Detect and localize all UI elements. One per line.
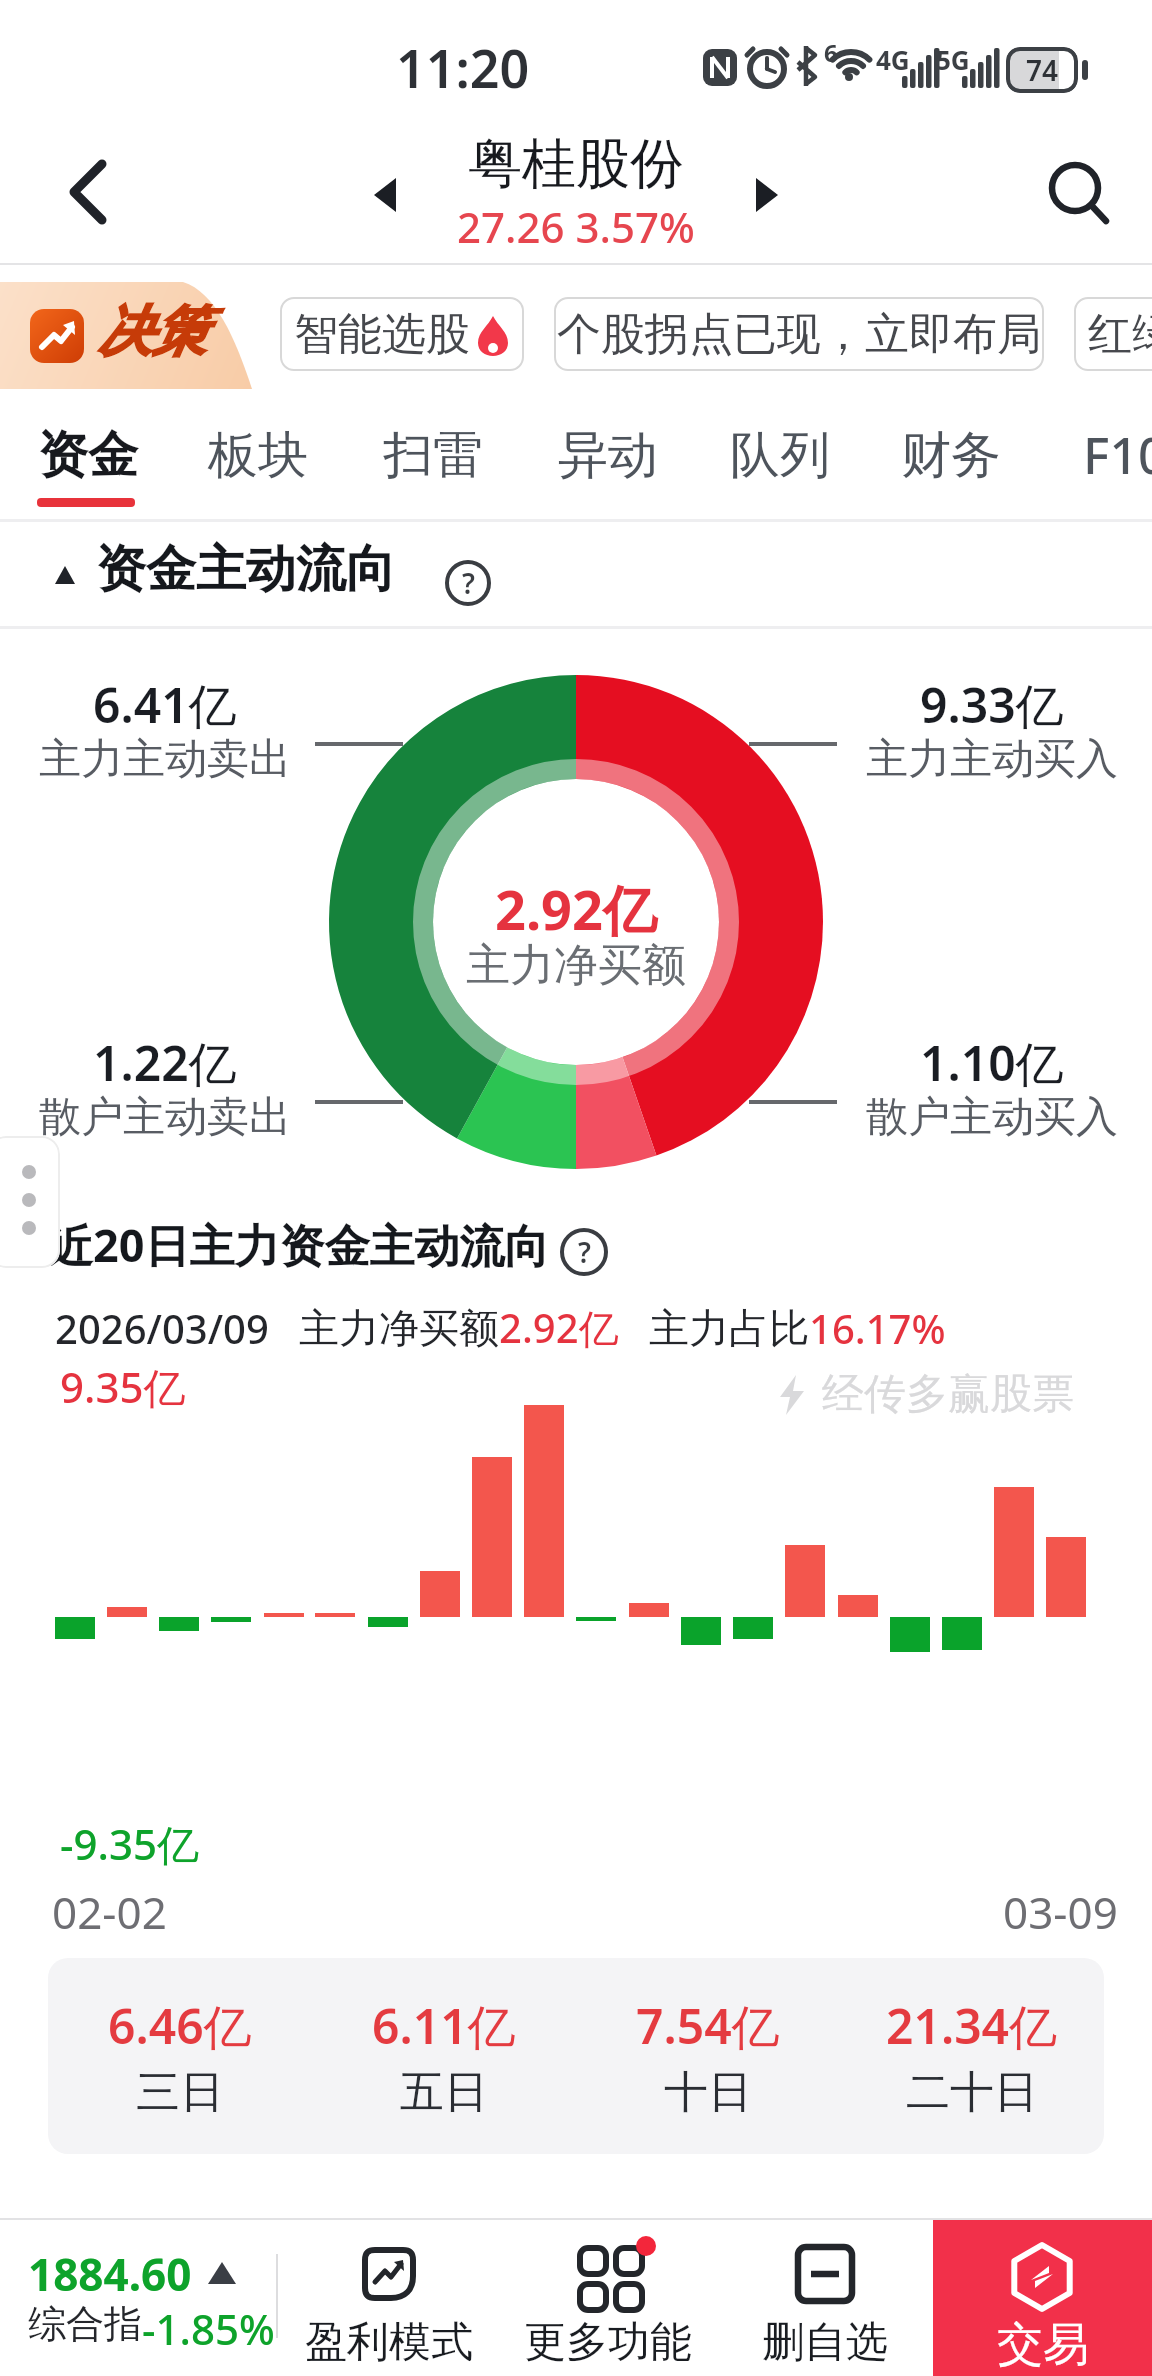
staticText: ? [462,564,475,602]
button[interactable]: 1884.60 [0,2220,280,2376]
staticText: 更多功能 [524,2316,692,2369]
button[interactable]: 交易 [933,2220,1152,2376]
staticText: F10 [1083,421,1152,489]
staticText: 02-02 [52,1882,167,1942]
staticText: 6.11亿 [372,1993,516,2059]
staticText: -1.85% [142,2300,275,2357]
staticText: ? [578,1233,591,1271]
staticText: 近20日主力资金主动流向 [48,1214,550,1275]
button[interactable]: 6.11亿 [312,1958,576,2154]
staticText: 9.33亿 [920,672,1064,738]
staticText: 11:20 [396,32,530,103]
staticText: 资金 [38,424,138,487]
button[interactable]: F10 [1060,410,1152,500]
staticText: 21.34亿 [886,1993,1058,2059]
button[interactable] [754,178,780,212]
staticText: 16.17% [809,1301,946,1355]
staticText: 资金主动流向 [96,538,396,601]
staticText: 删自选 [762,2316,888,2369]
button[interactable]: ? [445,560,491,606]
staticText: 经传多赢股票 [822,1368,1074,1421]
button[interactable]: 智能选股 [280,297,524,371]
button[interactable]: 个股拐点已现，立即布局 [554,297,1044,371]
button[interactable] [1030,145,1125,240]
staticText: -9.35亿 [60,1815,199,1872]
staticText: 队列 [730,424,830,487]
staticText: 三日 [136,2065,224,2120]
staticText: 27.26 3.57% [457,198,695,255]
staticText: 2.92亿 [495,872,657,946]
staticText: 板块 [208,424,308,487]
staticText: 2.92亿 [499,1300,619,1355]
staticText: 5G [936,42,970,77]
staticText: 散户主动买入 [866,1091,1118,1144]
staticText: 十日 [664,2065,752,2120]
staticText: 7.54亿 [636,1993,780,2059]
staticText: 2026/03/09 [55,1301,269,1355]
button[interactable]: 红绿先机 [1074,297,1152,371]
button[interactable]: ? [560,1228,608,1276]
button[interactable]: 财务 [886,410,1016,500]
staticText: 主力主动卖出 [39,733,291,786]
staticText: 盈利模式 [305,2316,473,2369]
staticText: 红绿先机 [1088,307,1152,362]
staticText: 智能选股 [294,307,470,362]
button[interactable]: 6.46亿 [48,1958,312,2154]
button[interactable]: 更多功能 [513,2220,703,2376]
button[interactable]: 21.34亿 [840,1958,1104,2154]
staticText: 粤桂股份 [468,130,684,198]
staticText: 财务 [901,424,1001,487]
staticText: 1884.60 [28,2244,192,2304]
staticText: 4G [876,42,910,77]
button[interactable]: 队列 [715,410,845,500]
button[interactable]: 板块 [193,410,323,500]
button[interactable]: 决策 [0,282,258,389]
staticText: 03-09 [1003,1882,1118,1942]
staticText: 6.41亿 [93,672,237,738]
button[interactable] [0,1136,60,1268]
staticText: 6 [824,36,838,69]
staticText: 决策 [98,298,206,366]
button[interactable]: 盈利模式 [294,2220,484,2376]
staticText: 1.10亿 [920,1030,1064,1096]
staticText: 个股拐点已现，立即布局 [557,307,1041,362]
staticText: 散户主动卖出 [39,1091,291,1144]
staticText: 五日 [400,2065,488,2120]
staticText: 6.46亿 [108,1993,252,2059]
staticText: 交易 [997,2316,1089,2374]
staticText: 主力主动买入 [866,733,1118,786]
button[interactable]: 7.54亿 [576,1958,840,2154]
button[interactable] [372,178,398,212]
staticText: 主力占比 [649,1303,809,1353]
staticText: 扫雷 [383,424,483,487]
staticText: 9.35亿 [60,1358,186,1415]
staticText: 二十日 [906,2065,1038,2120]
staticText: 74 [1026,51,1059,89]
staticText: 综合指 [28,2300,142,2348]
button[interactable] [50,150,130,230]
staticText: 异动 [558,424,658,487]
button[interactable]: 异动 [543,410,673,500]
staticText: 主力净买额 [299,1303,499,1353]
button[interactable]: 扫雷 [368,410,498,500]
button[interactable]: 资金 [23,410,153,500]
staticText: 1.22亿 [93,1030,237,1096]
staticText: 主力净买额 [466,938,686,993]
button[interactable]: 删自选 [730,2220,920,2376]
